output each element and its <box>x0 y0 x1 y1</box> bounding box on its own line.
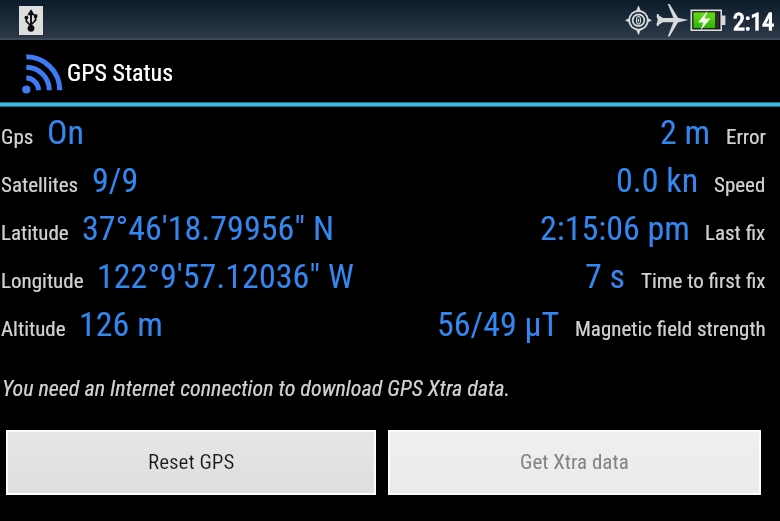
staticText: Time to first fix <box>641 269 766 294</box>
other: GPS Status <box>0 40 62 102</box>
other: Battery charging <box>690 9 725 32</box>
staticText: 2:15:06 pm <box>540 208 690 248</box>
staticText: On <box>47 112 84 152</box>
other: GPS <box>625 5 653 36</box>
staticText: Satellites <box>1 173 79 198</box>
staticText: 37°46'18.79956" N <box>82 208 334 248</box>
staticText: Latitude <box>1 221 69 246</box>
staticText: Speed <box>714 173 766 198</box>
staticText: Reset GPS <box>148 450 235 475</box>
other: USB connected <box>19 6 43 35</box>
staticText: 7 s <box>585 256 626 296</box>
staticText: Error <box>726 125 766 150</box>
staticText: 126 m <box>79 304 163 344</box>
button[interactable]: Reset GPS <box>8 432 374 493</box>
staticText: 56/49 µT <box>437 304 560 344</box>
staticText: Altitude <box>1 317 66 342</box>
staticText: GPS Status <box>67 59 174 87</box>
staticText: Gps <box>1 125 34 150</box>
staticText: Longitude <box>1 269 84 294</box>
staticText: 2:14 <box>733 8 775 36</box>
staticText: Get Xtra data <box>520 450 629 475</box>
staticText: 2 m <box>660 112 711 152</box>
other: Airplane mode <box>654 3 690 39</box>
staticText: Magnetic field strength <box>575 317 766 342</box>
staticText: 122°9'57.12036" W <box>97 256 354 296</box>
staticText: Last fix <box>705 221 766 246</box>
staticText: 0.0 kn <box>616 160 699 200</box>
button[interactable]: GPS Status <box>0 40 200 102</box>
staticText: 9/9 <box>92 160 139 200</box>
staticText: You need an Internet connection to downl… <box>2 376 511 402</box>
button[interactable]: Get Xtra data <box>390 432 759 493</box>
